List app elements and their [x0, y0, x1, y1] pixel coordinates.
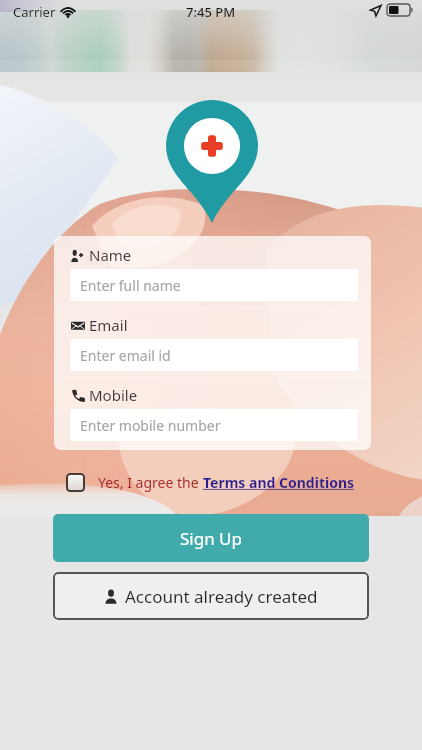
staticText: Account already created	[125, 585, 318, 608]
staticText: Enter full name	[80, 276, 181, 295]
staticText: Sign Up	[180, 527, 242, 550]
staticText: Email	[89, 315, 128, 335]
button[interactable]: Yes, I agree the	[66, 473, 355, 492]
button[interactable]: Account already created	[53, 572, 369, 620]
button[interactable]: Enter mobile number	[70, 409, 358, 441]
button[interactable]: Enter email id	[70, 339, 358, 371]
staticText: Name	[89, 245, 132, 265]
button[interactable]: Terms and Conditions	[203, 473, 355, 492]
button[interactable]: Enter full name	[70, 269, 358, 301]
staticText: Enter mobile number	[80, 416, 221, 435]
staticText: Mobile	[89, 385, 138, 405]
staticText: 7:45 PM	[186, 3, 236, 21]
staticText: Yes, I agree the	[98, 473, 203, 492]
button[interactable]: Sign Up	[53, 514, 369, 562]
staticText: Enter email id	[80, 346, 171, 365]
staticText: Carrier	[13, 3, 56, 21]
